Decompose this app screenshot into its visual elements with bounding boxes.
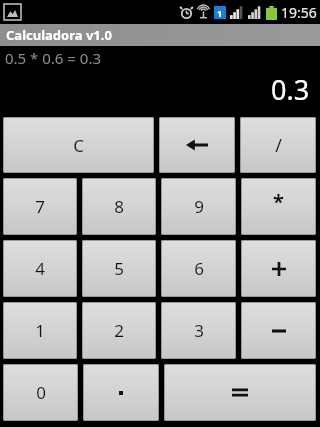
staticText: 9 (194, 195, 204, 218)
button[interactable]: 5 (82, 240, 156, 297)
staticText: 6 (194, 257, 204, 280)
button[interactable]: 7 (3, 178, 77, 235)
staticText: 19:56 (281, 3, 317, 22)
staticText: C (73, 134, 84, 157)
button[interactable]: 6 (161, 240, 236, 297)
button[interactable]: 0 (3, 364, 78, 421)
button[interactable]: Equals (164, 364, 316, 421)
button[interactable]: Plus (241, 240, 316, 297)
staticText: 0.3 (271, 71, 310, 108)
staticText: 2 (114, 319, 124, 342)
staticText: 1 (217, 7, 223, 19)
staticText: 0.5 * 0.6 = 0.3 (5, 48, 101, 68)
button[interactable]: Multiply (241, 178, 316, 235)
staticText: 5 (114, 257, 124, 280)
button[interactable]: 9 (161, 178, 236, 235)
staticText: 1 (35, 319, 45, 342)
button[interactable]: 3 (161, 302, 236, 359)
staticText: * (273, 188, 284, 215)
button[interactable]: Decimal point (83, 364, 159, 421)
staticText: Calculadora v1.0 (6, 26, 112, 44)
button[interactable]: Backspace (159, 117, 235, 173)
button[interactable]: C (3, 117, 154, 173)
staticText: 0 (36, 381, 46, 404)
button[interactable]: Minus (241, 302, 316, 359)
button[interactable]: 2 (82, 302, 156, 359)
staticText: 3 (194, 319, 204, 342)
staticText: / (275, 133, 282, 158)
staticText: 7 (35, 195, 45, 218)
button[interactable]: 1 (3, 302, 77, 359)
button[interactable]: 4 (3, 240, 77, 297)
staticText: 4 (35, 257, 45, 280)
staticText: 8 (114, 195, 124, 218)
button[interactable]: 8 (82, 178, 156, 235)
button[interactable]: / (240, 117, 316, 173)
